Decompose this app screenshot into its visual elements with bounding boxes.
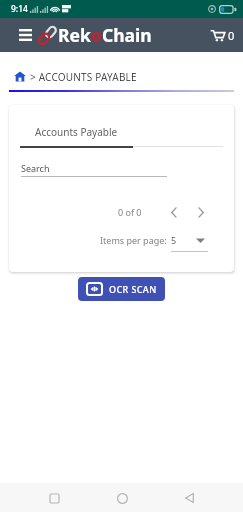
staticText: Chain xyxy=(102,23,152,47)
button[interactable]: Back xyxy=(176,485,202,511)
button[interactable]: Recents xyxy=(41,485,67,511)
staticText: Rek xyxy=(58,23,91,47)
button[interactable]: Home xyxy=(109,485,135,511)
staticText: 9:14 xyxy=(11,3,28,15)
staticText: o xyxy=(91,23,102,47)
button[interactable]: Menu xyxy=(16,25,34,45)
staticText: Items per page: xyxy=(100,234,167,246)
staticText: 5 xyxy=(171,234,177,246)
button[interactable]: Previous page xyxy=(165,203,183,221)
staticText: Search xyxy=(21,162,50,174)
staticText: 0 xyxy=(228,28,235,43)
button[interactable]: Accounts Payable xyxy=(20,125,133,139)
button[interactable]: OCR SCAN xyxy=(78,277,165,301)
staticText: OCR SCAN xyxy=(109,283,157,295)
staticText: Accounts Payable xyxy=(35,125,118,139)
staticText: 0 of 0 xyxy=(118,206,142,218)
button[interactable]: 5 xyxy=(171,234,208,252)
button[interactable]: Next page xyxy=(192,203,210,221)
staticText: > ACCOUNTS PAYABLE xyxy=(30,70,137,84)
button[interactable]: Cart xyxy=(209,28,237,43)
